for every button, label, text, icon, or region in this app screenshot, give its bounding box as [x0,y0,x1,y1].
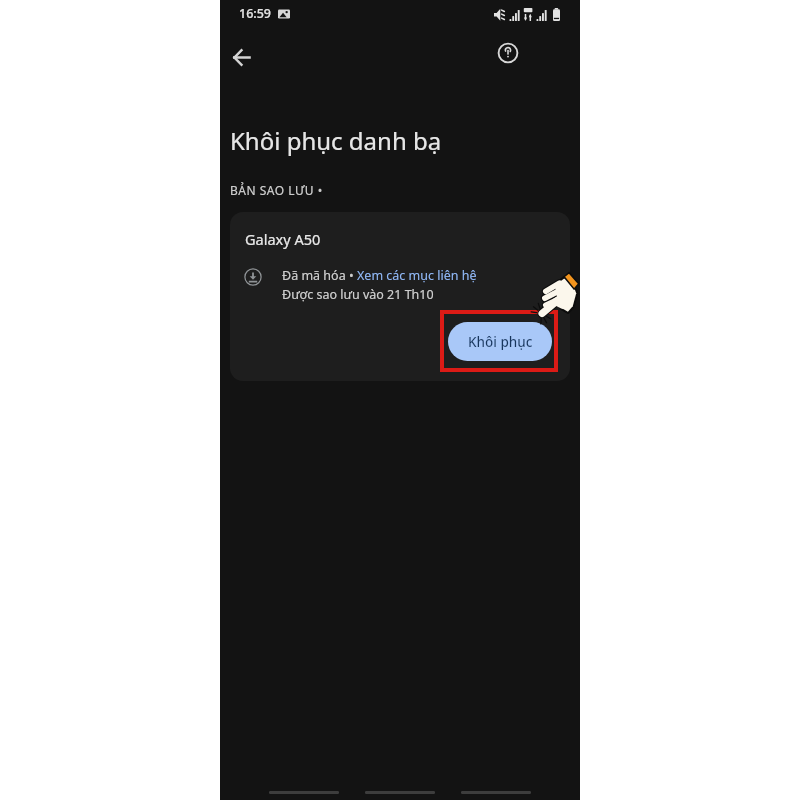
staticText: Xem các mục liên hệ [357,267,477,284]
button[interactable]: Home [352,776,448,800]
button[interactable]: Khôi phục [448,322,552,361]
button[interactable]: Help [487,32,529,74]
staticText: BẢN SAO LƯU • [230,182,323,198]
staticText: Khôi phục danh bạ [230,124,442,157]
button[interactable]: Back [220,36,262,78]
staticText: Đã mã hóa • [282,267,357,284]
staticText: Được sao lưu vào 21 Th10 [282,286,434,303]
staticText: 16:59 [239,5,272,22]
button[interactable]: Recents [256,776,352,800]
button[interactable]: Back [448,776,544,800]
staticText: Khôi phục [468,333,533,351]
staticText: Galaxy A50 [245,229,321,249]
